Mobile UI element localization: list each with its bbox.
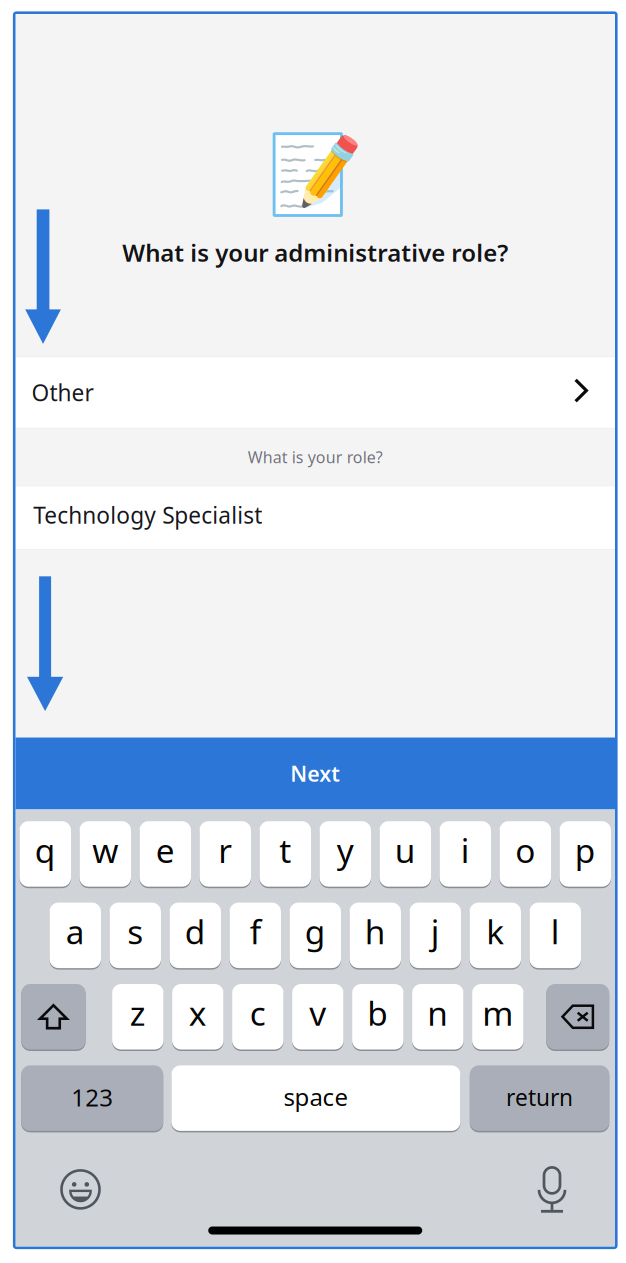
staticText: a: [66, 909, 85, 953]
staticText: What is your role?: [248, 446, 383, 468]
button[interactable]: l: [529, 901, 581, 970]
staticText: b: [367, 991, 388, 1035]
staticText: r: [218, 828, 232, 872]
staticText: o: [515, 828, 535, 872]
button[interactable]: a: [49, 901, 101, 970]
staticText: z: [130, 991, 146, 1035]
staticText: h: [365, 909, 386, 953]
button[interactable]: Emoji: [58, 1167, 102, 1211]
button[interactable]: v: [292, 982, 344, 1051]
button[interactable]: space: [171, 1064, 460, 1132]
staticText: i: [461, 828, 470, 872]
staticText: c: [250, 991, 266, 1035]
staticText: y: [337, 828, 354, 872]
staticText: m: [482, 991, 513, 1035]
staticText: n: [427, 991, 448, 1035]
staticText: d: [185, 909, 206, 953]
button[interactable]: y: [319, 820, 371, 888]
button[interactable]: return: [470, 1064, 609, 1132]
staticText: l: [551, 909, 560, 953]
staticText: s: [127, 909, 143, 953]
button[interactable]: Delete: [546, 982, 609, 1051]
button[interactable]: m: [472, 982, 524, 1051]
button[interactable]: q: [19, 820, 71, 888]
staticText: 📝: [267, 130, 363, 219]
staticText: e: [156, 828, 175, 872]
button[interactable]: i: [439, 820, 491, 888]
staticText: f: [250, 909, 261, 953]
staticText: What is your administrative role?: [122, 236, 508, 268]
button[interactable]: n: [412, 982, 464, 1051]
button[interactable]: Dictate: [530, 1165, 574, 1213]
button[interactable]: Technology Specialist: [15, 486, 615, 549]
staticText: v: [309, 991, 326, 1035]
button[interactable]: b: [352, 982, 404, 1051]
button[interactable]: w: [79, 820, 131, 888]
button[interactable]: j: [409, 901, 461, 970]
button[interactable]: Next: [15, 737, 615, 809]
staticText: t: [279, 828, 291, 872]
button[interactable]: d: [169, 901, 221, 970]
button[interactable]: r: [199, 820, 251, 888]
button[interactable]: 123: [21, 1064, 163, 1132]
button[interactable]: f: [229, 901, 281, 970]
staticText: j: [431, 909, 440, 953]
staticText: g: [305, 909, 326, 953]
staticText: 123: [71, 1081, 113, 1113]
staticText: u: [395, 828, 416, 872]
button[interactable]: u: [379, 820, 431, 888]
button[interactable]: Other: [15, 357, 615, 428]
staticText: Technology Specialist: [33, 500, 262, 530]
button[interactable]: c: [232, 982, 284, 1051]
staticText: space: [283, 1081, 348, 1113]
button[interactable]: Shift: [21, 982, 86, 1051]
button[interactable]: h: [349, 901, 401, 970]
staticText: return: [506, 1082, 573, 1112]
staticText: Other: [31, 377, 93, 408]
button[interactable]: e: [139, 820, 191, 888]
staticText: q: [35, 828, 56, 872]
staticText: x: [189, 991, 207, 1035]
staticText: k: [486, 909, 504, 953]
button[interactable]: g: [289, 901, 341, 970]
staticText: p: [575, 828, 596, 872]
button[interactable]: x: [172, 982, 224, 1051]
button[interactable]: o: [499, 820, 551, 888]
button[interactable]: p: [559, 820, 611, 888]
button[interactable]: t: [259, 820, 311, 888]
button[interactable]: z: [112, 982, 164, 1051]
staticText: w: [92, 828, 118, 872]
button[interactable]: s: [109, 901, 161, 970]
button[interactable]: k: [469, 901, 521, 970]
staticText: Next: [290, 759, 340, 788]
